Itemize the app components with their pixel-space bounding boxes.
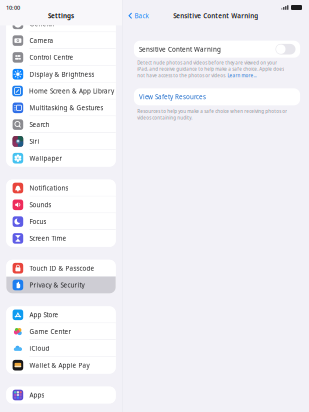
button[interactable]: Touch ID & Passcode (6, 260, 116, 277)
staticText: Wallet & Apple Pay (29, 361, 89, 369)
button[interactable]: Siri (6, 133, 116, 150)
button[interactable]: Screen Time (6, 230, 116, 247)
button[interactable]: iCloud (6, 340, 116, 357)
staticText: General (29, 19, 54, 28)
staticText: 10:00 (6, 4, 20, 11)
button[interactable]: Notifications (6, 180, 116, 196)
staticText: Settings (48, 11, 74, 20)
staticText: Game Center (29, 327, 71, 336)
staticText: Wallpaper (29, 154, 62, 162)
staticText: not have access to the photos or videos. (137, 72, 226, 79)
button[interactable]: General (6, 15, 116, 32)
staticText: Notifications (29, 184, 68, 192)
staticText: Touch ID & Passcode (29, 264, 94, 272)
button[interactable]: Home Screen & App Library (6, 83, 116, 99)
staticText: Search (29, 120, 49, 129)
button[interactable]: Apps (6, 387, 116, 403)
staticText: Sensitive Content Warning (173, 11, 258, 20)
staticText: Display & Brightness (29, 70, 94, 78)
staticText: App Store (29, 310, 58, 319)
button[interactable]: App Store (6, 306, 116, 323)
staticText: iPad, and receive guidance to help make … (137, 66, 284, 72)
staticText: videos containing nudity. (137, 115, 192, 121)
button[interactable]: Game Center (6, 323, 116, 340)
button[interactable]: Control Centre (6, 49, 116, 66)
staticText: Multitasking & Gestures (29, 103, 103, 112)
staticText: Camera (29, 36, 53, 45)
staticText: Learn more... (228, 72, 257, 79)
button[interactable]: Sounds (6, 196, 116, 213)
button[interactable]: View Safety Resources (134, 88, 300, 105)
staticText: Control Centre (29, 53, 73, 62)
button[interactable]: Wallet & Apple Pay (6, 357, 116, 374)
button[interactable]: Privacy & Security (6, 277, 116, 293)
staticText: Detect nude photos and videos before the… (137, 60, 277, 66)
button[interactable]: Camera (6, 32, 116, 49)
staticText: Back (134, 11, 148, 20)
button[interactable]: Multitasking & Gestures (6, 99, 116, 116)
button[interactable]: Search (6, 116, 116, 133)
button[interactable]: Back (122, 5, 148, 20)
staticText: View Safety Resources (139, 93, 206, 101)
staticText: Siri (29, 137, 39, 146)
staticText: Home Screen & App Library (29, 87, 114, 95)
staticText: iCloud (29, 344, 49, 353)
staticText: Sensitive Content Warning (139, 45, 221, 53)
button[interactable]: Wallpaper (6, 150, 116, 167)
staticText: Privacy & Security (29, 281, 84, 289)
staticText: Resources to help you make a safe choice… (137, 108, 287, 114)
staticText: Focus (29, 217, 46, 226)
button[interactable]: Focus (6, 213, 116, 230)
staticText: Screen Time (29, 234, 66, 243)
staticText: Sounds (29, 200, 51, 209)
staticText: Apps (29, 391, 44, 399)
button[interactable]: Display & Brightness (6, 66, 116, 83)
